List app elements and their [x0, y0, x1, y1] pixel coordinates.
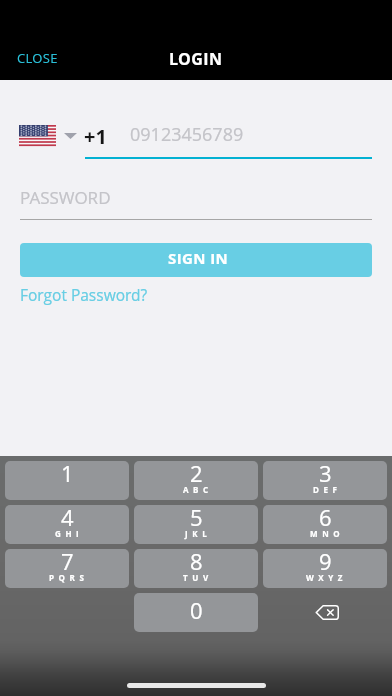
staticText: GHI [55, 528, 84, 539]
staticText: 1 [61, 461, 74, 488]
staticText: 8 [190, 549, 203, 576]
staticText: 5 [190, 505, 203, 532]
button[interactable]: 3 [263, 461, 387, 500]
staticText: TUV [183, 572, 213, 583]
staticText: SIGN IN [168, 248, 229, 268]
staticText: PQRS [49, 572, 89, 583]
button[interactable]: 8 [134, 549, 258, 588]
button[interactable]: 6 [263, 505, 387, 544]
staticText: 9 [319, 549, 332, 576]
button[interactable]: Backspace [263, 593, 387, 632]
button[interactable]: CLOSE [10, 45, 65, 71]
button[interactable]: 2 [134, 461, 258, 500]
staticText: 2 [190, 461, 203, 488]
staticText: MNO [310, 528, 345, 539]
staticText: CLOSE [17, 49, 58, 67]
staticText: 6 [319, 505, 332, 532]
staticText: ABC [183, 484, 213, 495]
staticText: PASSWORD [20, 186, 111, 209]
staticText: LOGIN [169, 48, 223, 70]
button[interactable]: 9 [263, 549, 387, 588]
button[interactable]: 4 [5, 505, 129, 544]
button[interactable]: SIGN IN [20, 243, 372, 277]
staticText: Forgot Password? [20, 284, 148, 305]
button[interactable]: 5 [134, 505, 258, 544]
staticText: +1 [84, 123, 107, 150]
staticText: 4 [61, 505, 74, 532]
staticText: 0 [190, 595, 203, 625]
staticText: 7 [61, 549, 74, 576]
staticText: JKL [185, 528, 212, 539]
staticText: 09123456789 [130, 122, 244, 147]
staticText: WXYZ [306, 572, 348, 583]
button[interactable]: 7 [5, 549, 129, 588]
staticText: 3 [319, 461, 332, 488]
button[interactable]: 1 [5, 461, 129, 500]
button[interactable]: Select country code [15, 120, 81, 151]
button[interactable]: Forgot Password? [14, 280, 154, 309]
staticText: DEF [313, 484, 342, 495]
button[interactable]: 0 [134, 593, 258, 632]
